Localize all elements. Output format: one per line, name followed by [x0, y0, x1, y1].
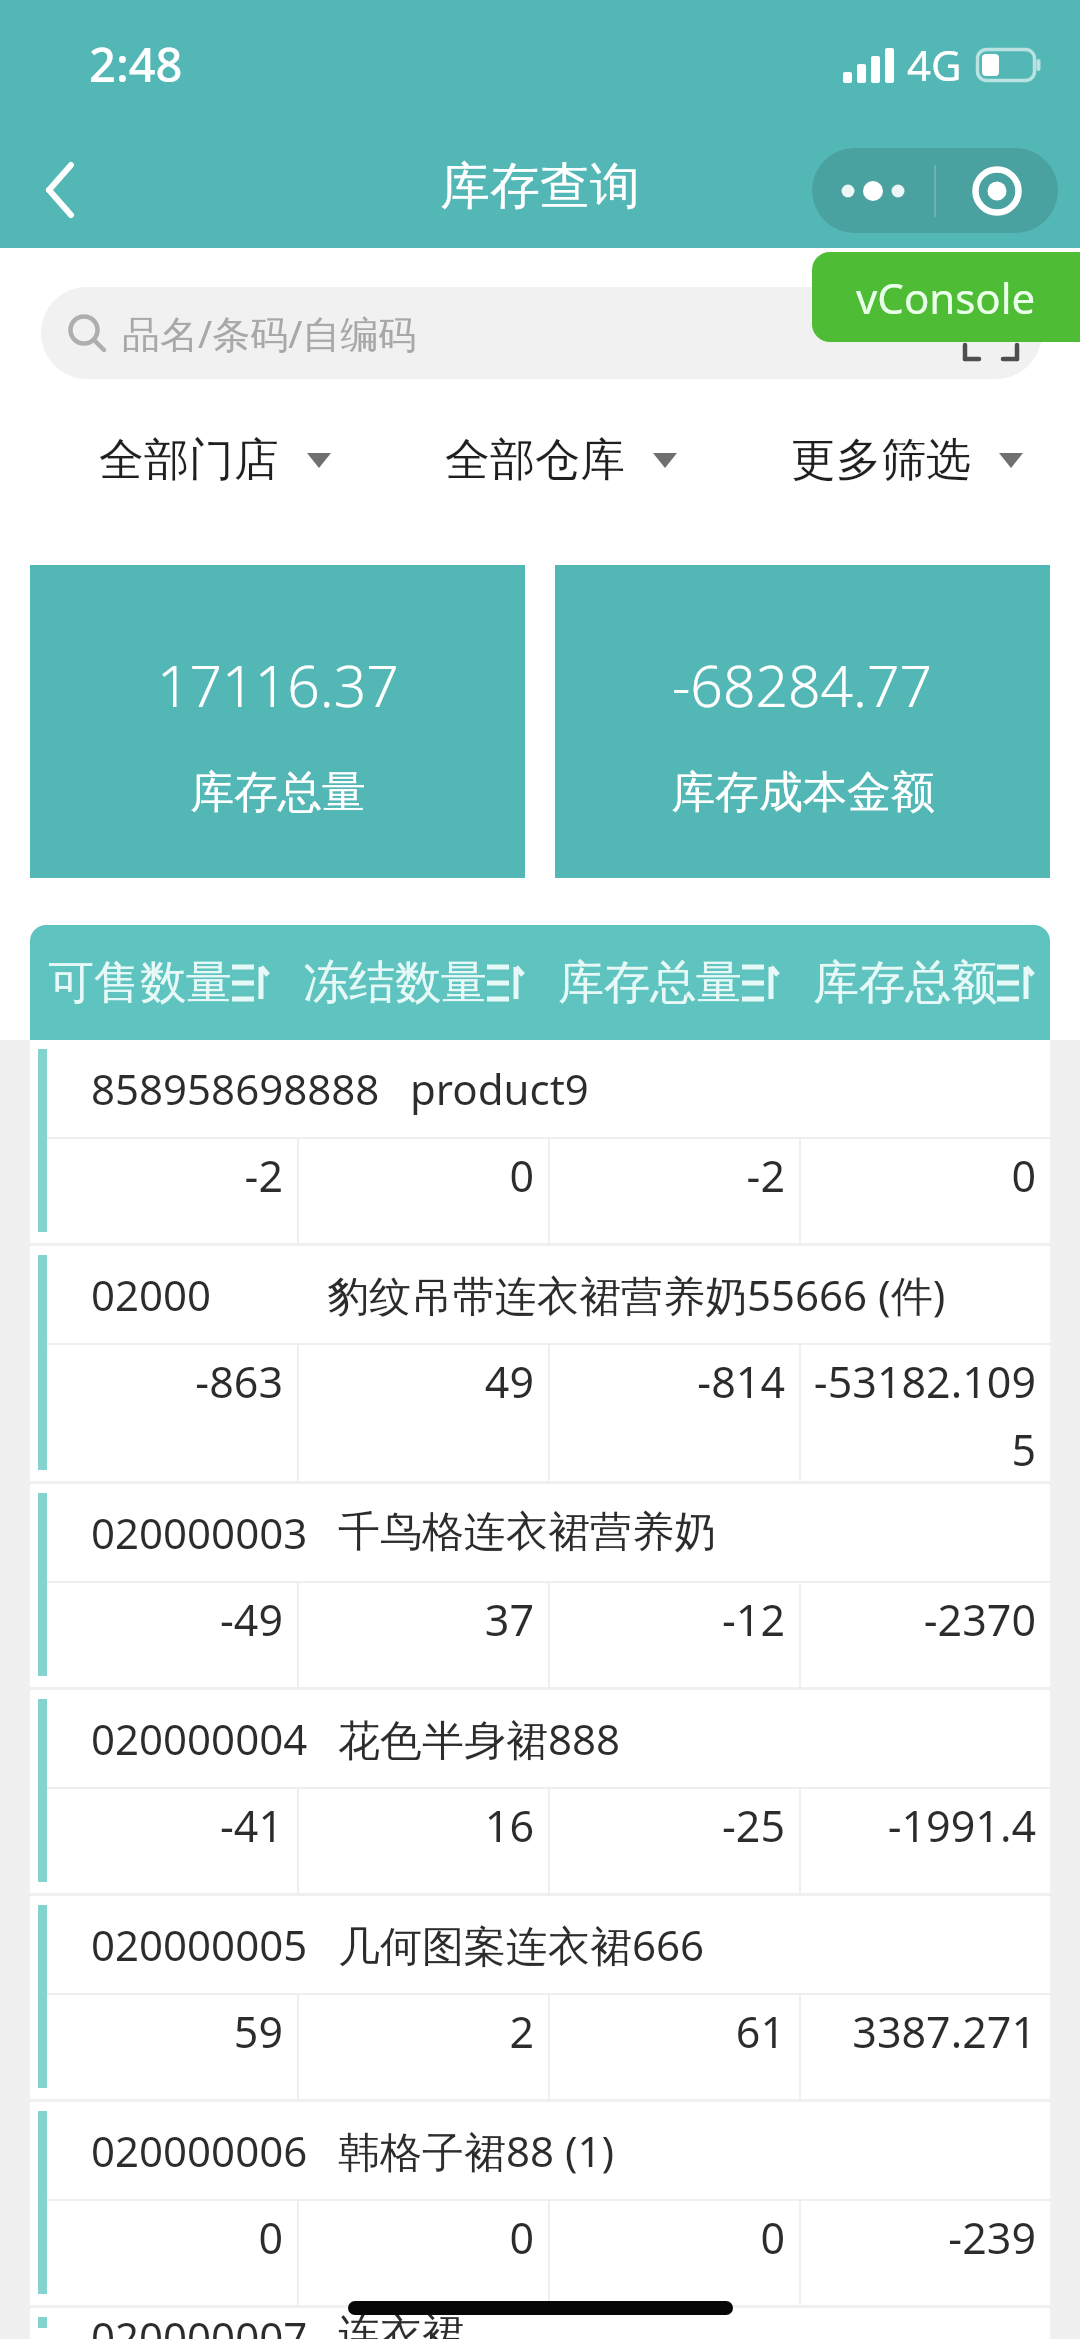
staticText: 韩格子裙88 (1) — [338, 2122, 615, 2179]
staticText: 02000 — [91, 1266, 212, 1323]
button[interactable]: 17116.37 — [30, 565, 525, 878]
staticText: 0 — [309, 2201, 534, 2269]
button[interactable]: 库存总量 — [540, 925, 795, 1040]
button[interactable]: vConsole — [812, 252, 1080, 342]
button[interactable]: 858958698888 — [30, 1040, 1050, 1243]
staticText: 连衣裙 — [338, 2308, 464, 2339]
staticText: 37 — [309, 1583, 534, 1651]
staticText: 020000006 — [91, 2122, 308, 2179]
staticText: vConsole — [856, 269, 1036, 326]
staticText: -49 — [59, 1583, 283, 1651]
staticText: 0 — [560, 2201, 785, 2269]
staticText: -25 — [560, 1789, 785, 1857]
staticText: 020000003 — [91, 1504, 308, 1561]
button[interactable]: Back — [10, 140, 110, 240]
staticText: 豹纹吊带连衣裙营养奶55666 (件) — [327, 1266, 946, 1323]
staticText: 品名/条码/自编码 — [122, 307, 417, 359]
staticText: 全部门店 — [99, 432, 279, 489]
staticText: -2 — [560, 1139, 785, 1207]
staticText: 020000005 — [91, 1916, 308, 1973]
staticText: -41 — [59, 1789, 283, 1857]
staticText: -1991.4 — [811, 1789, 1036, 1857]
staticText: 0 — [59, 2201, 283, 2269]
button[interactable]: 02000 — [30, 1246, 1050, 1481]
button[interactable]: 品名/条码/自编码 — [41, 287, 962, 379]
button[interactable]: 全部仓库 — [388, 387, 734, 533]
staticText: 库存总量 — [558, 954, 742, 1012]
staticText: 全部仓库 — [445, 432, 625, 489]
staticText: product9 — [410, 1060, 589, 1117]
button[interactable]: 020000005 — [30, 1896, 1050, 2099]
button[interactable]: Close mini program — [936, 148, 1058, 233]
staticText: -814 — [560, 1345, 785, 1413]
staticText: 020000007 — [91, 2308, 308, 2339]
staticText: 858958698888 — [91, 1060, 380, 1117]
staticText: 库存总量 — [190, 765, 366, 820]
staticText: 020000004 — [91, 1710, 308, 1767]
staticText: 59 — [59, 1995, 283, 2063]
button[interactable]: More options — [812, 148, 934, 233]
button[interactable]: 可售数量 — [30, 925, 285, 1040]
staticText: 49 — [309, 1345, 534, 1413]
staticText: 2 — [309, 1995, 534, 2063]
staticText: -53182.1095 — [811, 1345, 1036, 1481]
staticText: 更多筛选 — [791, 432, 971, 489]
staticText: 3387.271 — [811, 1995, 1036, 2063]
staticText: -239 — [811, 2201, 1036, 2269]
button[interactable]: 全部门店 — [42, 387, 388, 533]
staticText: 花色半身裙888 — [338, 1710, 621, 1767]
button[interactable]: 020000007 — [30, 2308, 1050, 2339]
button[interactable]: 冻结数量 — [285, 925, 540, 1040]
button[interactable]: Scan barcode — [962, 287, 1042, 379]
staticText: 千鸟格连衣裙营养奶 — [338, 1506, 716, 1559]
button[interactable]: 库存总额 — [795, 925, 1050, 1040]
staticText: 61 — [560, 1995, 785, 2063]
staticText: 4G — [907, 36, 962, 93]
staticText: 冻结数量 — [303, 954, 487, 1012]
staticText: 17116.37 — [157, 646, 399, 724]
button[interactable]: 020000006 — [30, 2102, 1050, 2305]
button[interactable]: 020000003 — [30, 1484, 1050, 1687]
button[interactable]: -68284.77 — [555, 565, 1050, 878]
staticText: 16 — [309, 1789, 534, 1857]
staticText: 库存总额 — [813, 954, 997, 1012]
staticText: 0 — [811, 1139, 1036, 1207]
staticText: -12 — [560, 1583, 785, 1651]
button[interactable]: 020000004 — [30, 1690, 1050, 1893]
staticText: 可售数量 — [48, 954, 232, 1012]
staticText: -2370 — [811, 1583, 1036, 1651]
staticText: 几何图案连衣裙666 — [338, 1916, 705, 1973]
staticText: 库存成本金额 — [671, 765, 935, 820]
button[interactable]: 更多筛选 — [734, 387, 1080, 533]
staticText: -2 — [59, 1139, 283, 1207]
staticText: 0 — [309, 1139, 534, 1207]
staticText: -863 — [59, 1345, 283, 1413]
staticText: -68284.77 — [672, 646, 933, 724]
staticText: 2:48 — [89, 32, 183, 96]
staticText: 库存查询 — [440, 155, 640, 218]
